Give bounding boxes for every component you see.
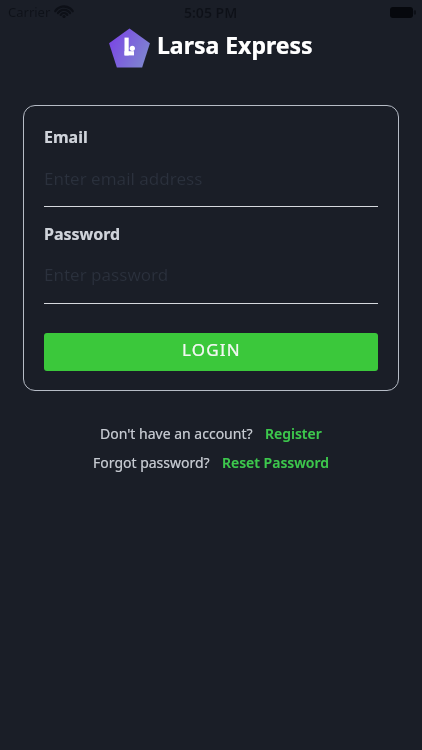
button[interactable]: Reset Password (222, 453, 330, 472)
staticText: Enter password (44, 263, 169, 286)
staticText: Email (44, 126, 88, 148)
staticText: Password (44, 223, 121, 245)
staticText: LOGIN (182, 338, 241, 361)
button[interactable]: LOGIN (44, 333, 378, 371)
staticText: 5:05 PM (184, 3, 238, 22)
staticText: Enter email address (44, 167, 203, 190)
staticText: Don't have an account? (100, 424, 253, 443)
staticText: Carrier (8, 3, 51, 21)
staticText: Forgot password? (93, 453, 210, 472)
staticText: Larsa Express (157, 29, 313, 60)
button[interactable]: Register (265, 424, 322, 443)
